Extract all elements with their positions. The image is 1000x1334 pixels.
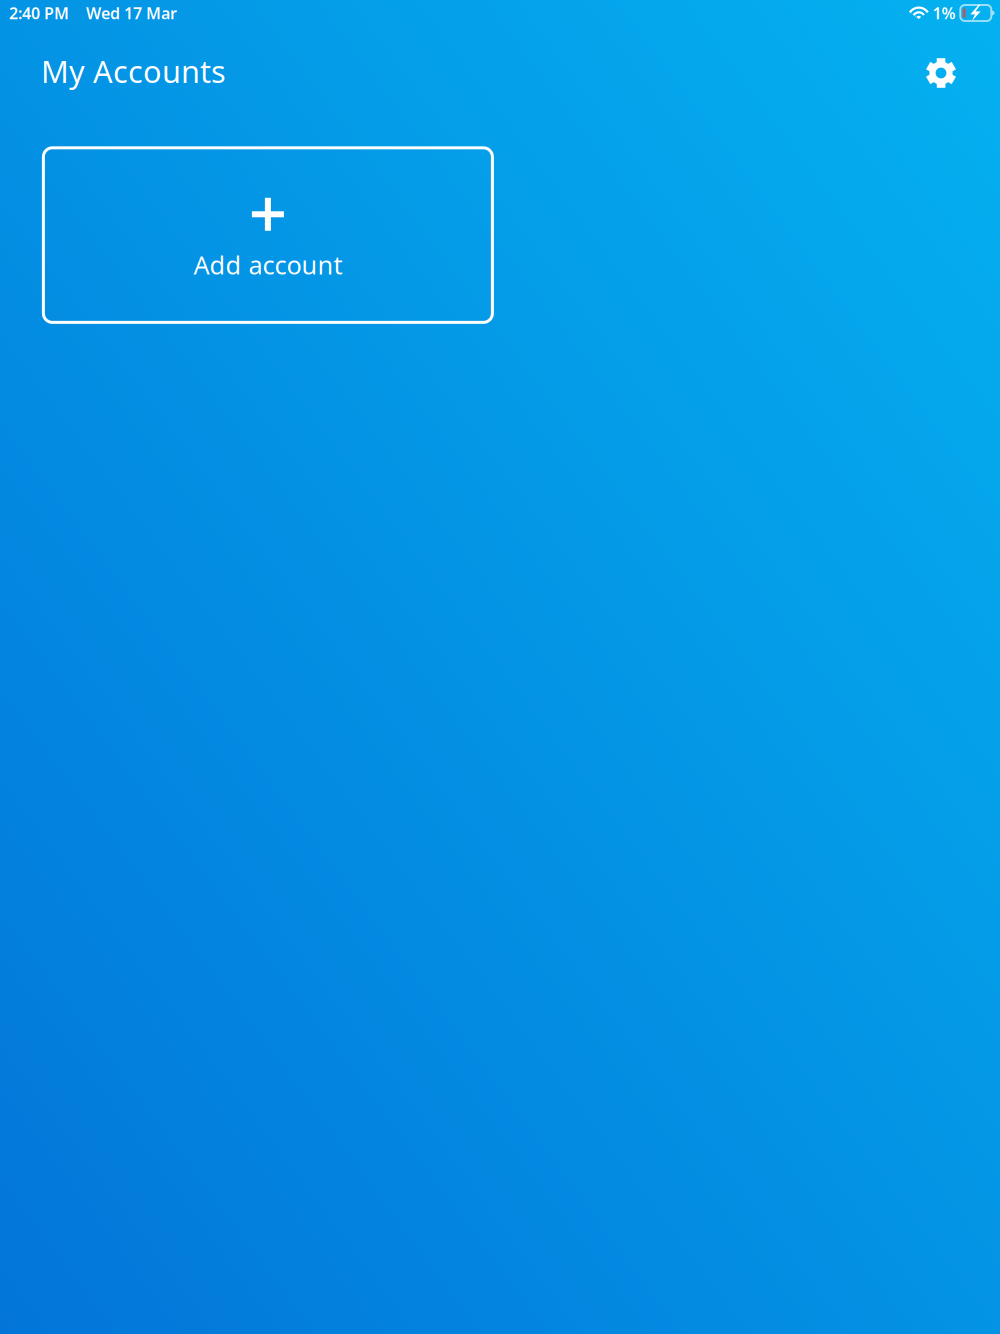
- button[interactable]: Settings: [912, 42, 970, 100]
- button[interactable]: Add account: [43, 148, 492, 322]
- staticText: Add account: [193, 248, 342, 281]
- staticText: My Accounts: [41, 51, 226, 91]
- staticText: Wed 17 Mar: [86, 2, 177, 24]
- staticText: 1%: [933, 2, 956, 24]
- staticText: 2:40 PM: [9, 2, 69, 24]
